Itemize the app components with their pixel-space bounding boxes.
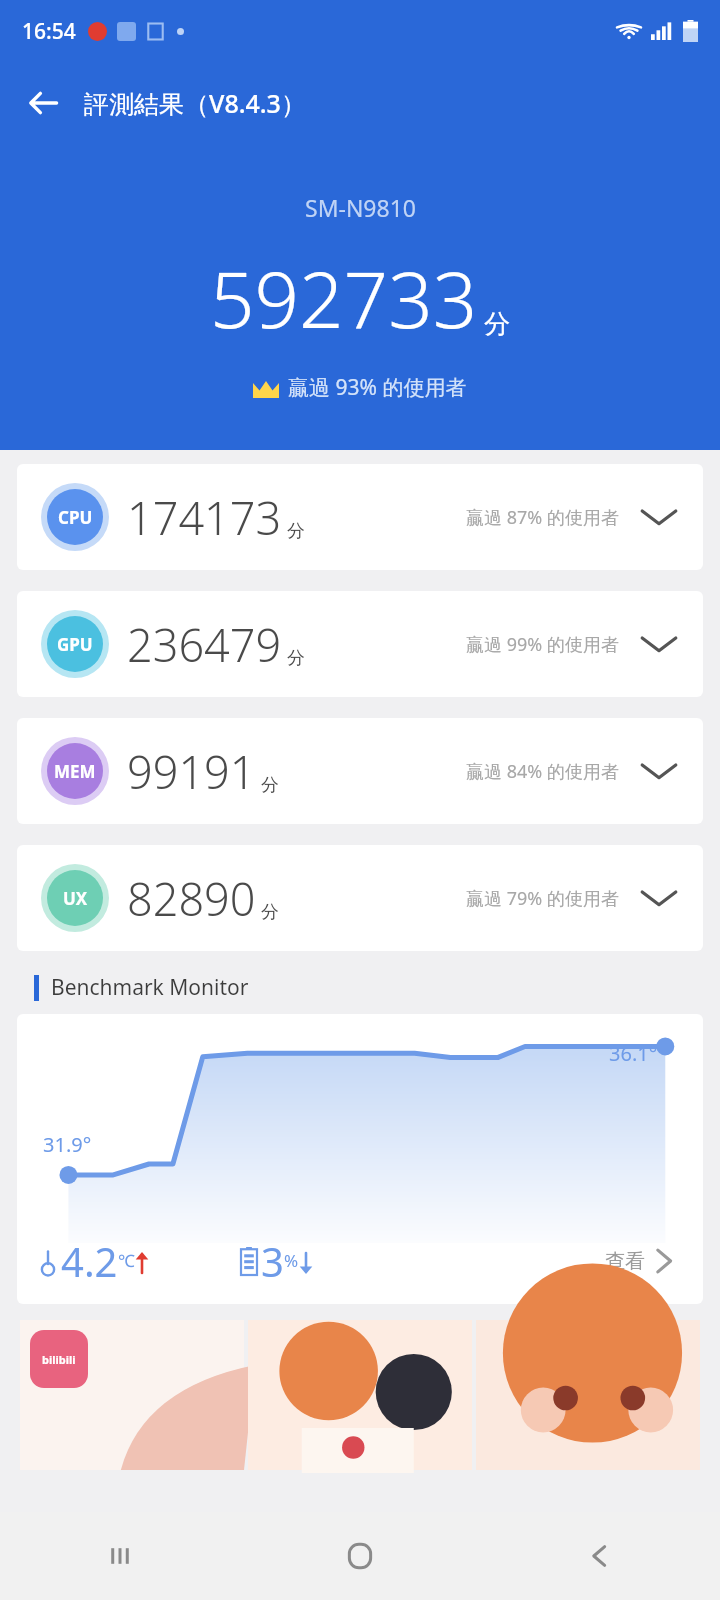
staticText: SM-N9810 [305,192,416,223]
staticText: ℃ [118,1249,135,1272]
button[interactable]: 31.9° [17,1014,703,1304]
staticText: 贏過 93% 的使用者 [288,373,467,402]
staticText: 贏過 79% 的使用者 [466,886,619,911]
button[interactable]: Home [240,1512,480,1600]
staticText: 分 [261,774,279,797]
button[interactable]: Back [20,79,68,127]
staticText: Benchmark Monitor [51,973,249,1002]
button[interactable]: Advertisement [248,1320,472,1470]
button[interactable]: 查看 [599,1238,681,1284]
staticText: 評測結果（V8.4.3） [84,86,306,120]
staticText: MEM [54,760,96,783]
staticText: 3 [261,1234,284,1288]
staticText: 贏過 84% 的使用者 [466,759,619,784]
staticText: 16:54 [22,17,76,46]
staticText: CPU [58,506,93,529]
staticText: 592733 [210,245,478,351]
button[interactable]: CPU [17,464,703,570]
button[interactable]: GPU [17,591,703,697]
staticText: 分 [484,308,510,341]
staticText: 贏過 87% 的使用者 [466,505,619,530]
staticText: 4.2 [61,1234,118,1288]
button[interactable]: Recent apps [0,1512,240,1600]
button[interactable]: Back [480,1512,720,1600]
staticText: 查看 [605,1249,645,1274]
staticText: % [284,1249,299,1272]
button[interactable]: Advertisement [476,1320,700,1470]
button[interactable]: MEM [17,718,703,824]
staticText: 174173 [127,487,282,548]
staticText: 99191 [127,741,256,802]
button[interactable]: UX [17,845,703,951]
staticText: 82890 [127,868,256,929]
staticText: 236479 [127,614,282,675]
staticText: 分 [287,647,305,670]
staticText: 36.1° [609,1040,658,1067]
staticText: GPU [57,633,93,656]
staticText: 分 [287,520,305,543]
button[interactable]: Advertisement [20,1320,244,1470]
staticText: UX [63,887,88,910]
staticText: 31.9° [43,1131,92,1158]
staticText: bilibili [42,1352,76,1367]
staticText: 分 [261,901,279,924]
staticText: 贏過 99% 的使用者 [466,632,619,657]
